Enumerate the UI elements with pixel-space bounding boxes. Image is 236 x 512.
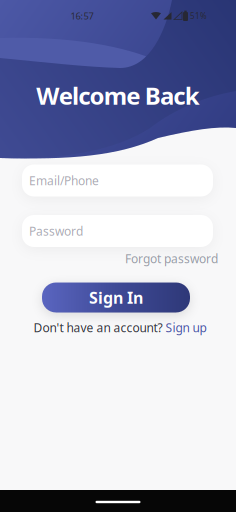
button[interactable]: Sign In — [42, 282, 190, 312]
staticText: Sign up — [165, 319, 206, 335]
staticText: Forgot password — [125, 250, 218, 266]
button[interactable]: Password — [22, 215, 213, 247]
button[interactable]: Sign up — [165, 319, 206, 335]
staticText: 16:57 — [70, 10, 93, 22]
staticText: Email/Phone — [29, 172, 99, 188]
button[interactable]: Forgot password — [125, 250, 218, 266]
staticText: Welcome Back — [36, 80, 200, 111]
staticText: Password — [29, 223, 83, 239]
button[interactable]: Email/Phone — [22, 164, 213, 196]
staticText: Sign In — [89, 287, 143, 308]
staticText: Don't have an account? — [33, 319, 162, 335]
staticText: 51% — [190, 11, 207, 21]
